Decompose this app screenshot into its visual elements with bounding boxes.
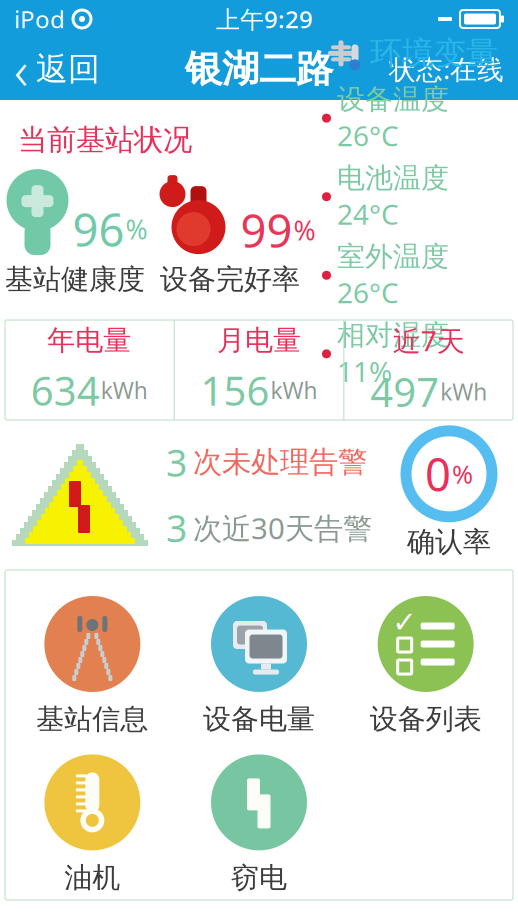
staticText: 油机 bbox=[64, 860, 120, 895]
button[interactable]: 近7天 bbox=[344, 320, 513, 420]
staticText: 99 bbox=[240, 200, 292, 260]
staticText: 室外温度26°C bbox=[337, 239, 449, 311]
staticText: 设备完好率 bbox=[160, 262, 300, 297]
staticText: iPod bbox=[14, 3, 65, 35]
staticText: 状态:在线 bbox=[389, 51, 504, 87]
staticText: kWh bbox=[440, 376, 487, 407]
staticText: ✓ bbox=[392, 605, 417, 639]
staticText: 设备温度26°C bbox=[337, 82, 449, 154]
staticText: 3 bbox=[166, 503, 187, 553]
button[interactable]: 月电量 bbox=[175, 320, 343, 420]
staticText: 次近30天告警 bbox=[193, 508, 372, 547]
staticText: 年电量 bbox=[47, 323, 131, 358]
staticText: 基站信息 bbox=[36, 702, 148, 736]
staticText: 银湖二路 bbox=[185, 46, 333, 92]
button[interactable]: ✓ bbox=[342, 596, 509, 736]
staticText: 设备列表 bbox=[370, 702, 482, 736]
staticText: % bbox=[293, 212, 315, 248]
button[interactable]: 状态:在线 bbox=[375, 38, 518, 100]
staticText: kWh bbox=[101, 375, 148, 405]
staticText: 窃电 bbox=[231, 860, 287, 895]
button[interactable]: 油机 bbox=[9, 754, 176, 895]
staticText: 返回 bbox=[36, 49, 100, 89]
staticText: 确认率 bbox=[407, 525, 491, 559]
staticText: 0 bbox=[425, 444, 451, 504]
staticText: kWh bbox=[270, 375, 317, 405]
button[interactable]: 设备电量 bbox=[176, 596, 342, 736]
button[interactable]: 基站信息 bbox=[9, 596, 176, 736]
staticText: 基站健康度 bbox=[5, 262, 145, 296]
staticText: 497 bbox=[370, 365, 439, 418]
staticText: 当前基站状况 bbox=[18, 122, 192, 158]
staticText: 相对湿度11% bbox=[337, 318, 449, 390]
staticText: 3 bbox=[166, 437, 187, 487]
staticText: 电池温度24°C bbox=[337, 161, 449, 232]
staticText: % bbox=[452, 457, 473, 491]
staticText: 设备电量 bbox=[203, 702, 315, 736]
button[interactable]: 年电量 bbox=[5, 320, 174, 420]
staticText: 634 bbox=[31, 364, 100, 417]
staticText: 96 bbox=[72, 199, 124, 259]
staticText: 156 bbox=[200, 364, 269, 417]
staticText: 月电量 bbox=[217, 323, 301, 358]
button[interactable]: 窃电 bbox=[176, 754, 342, 895]
staticText: 环境变量 bbox=[370, 34, 498, 73]
button[interactable]: ‹ bbox=[0, 38, 114, 100]
staticText: % bbox=[125, 211, 147, 247]
staticText: 近7天 bbox=[393, 322, 465, 359]
staticText: 次未处理告警 bbox=[193, 444, 367, 480]
staticText: ‹ bbox=[14, 34, 28, 104]
staticText: 上午9:29 bbox=[216, 3, 313, 35]
